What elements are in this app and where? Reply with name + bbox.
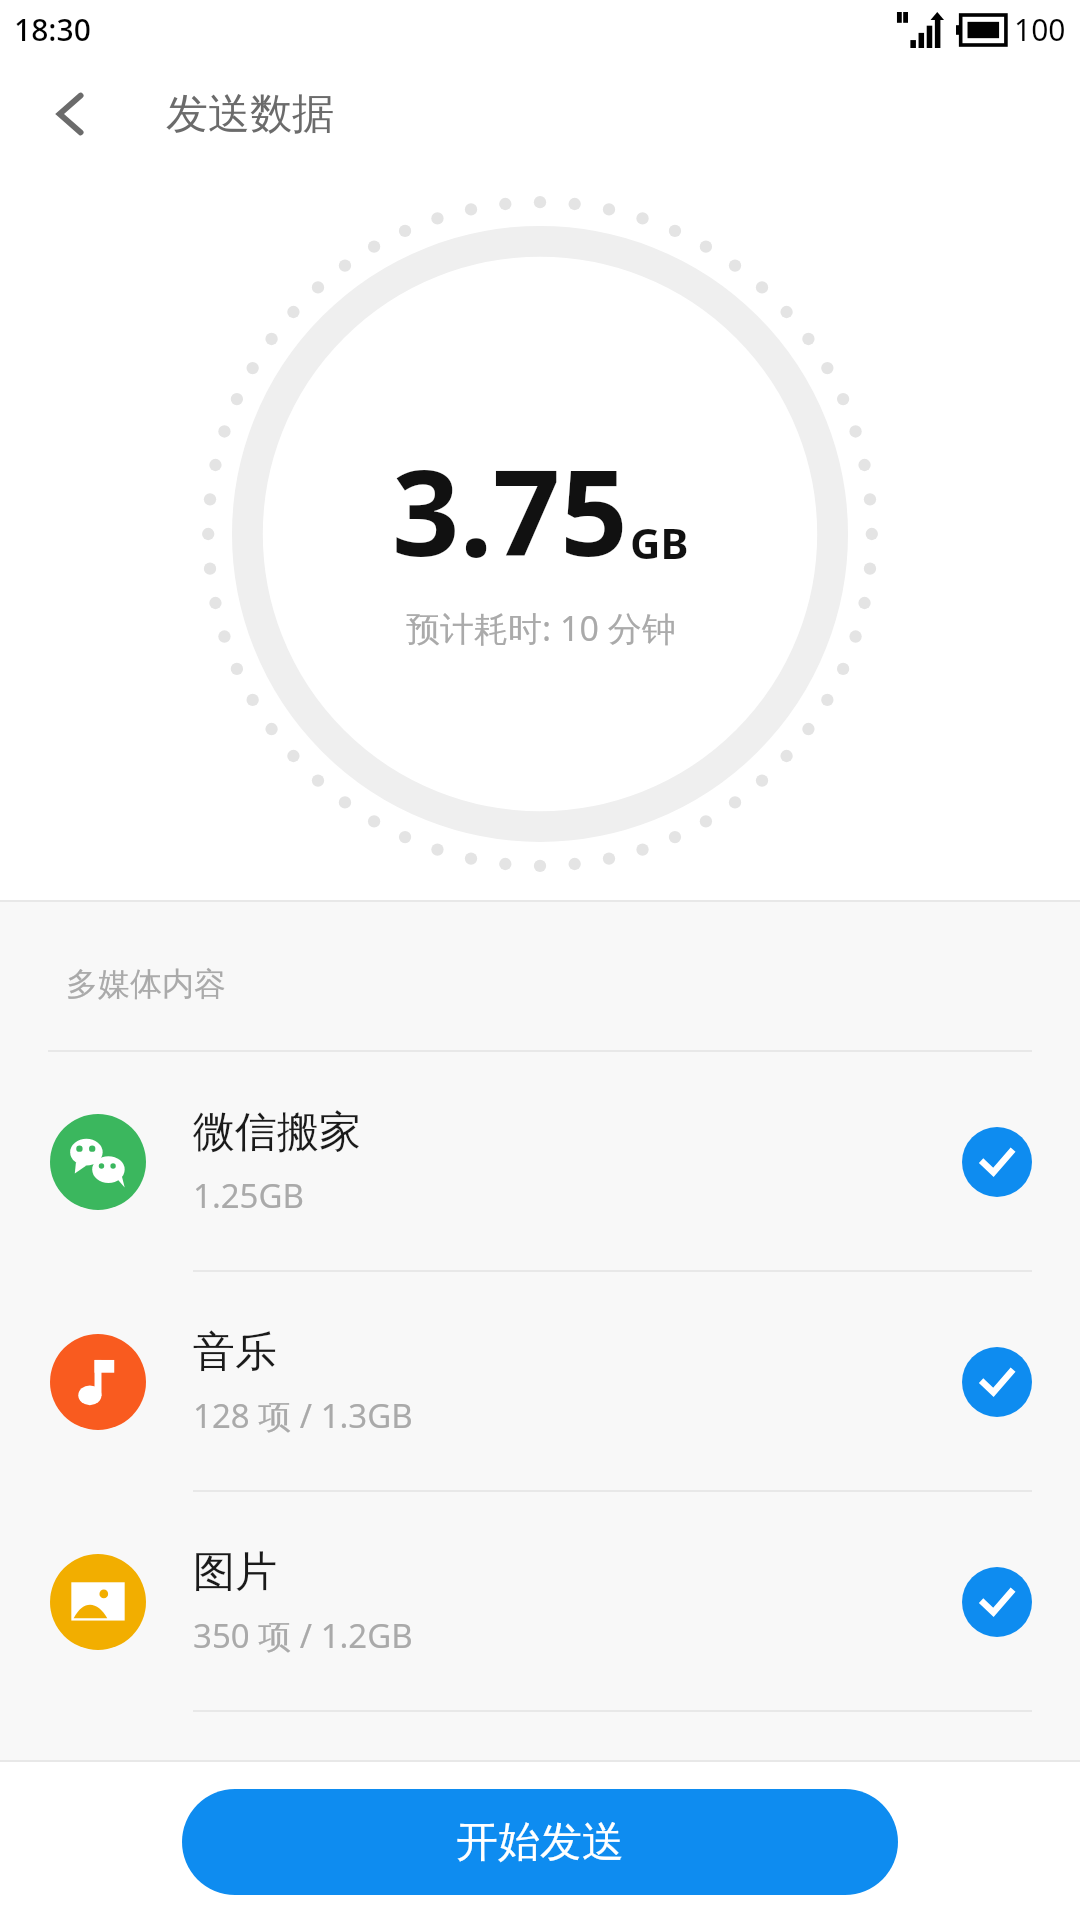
button[interactable]: 开始发送: [182, 1789, 898, 1895]
staticText: 音乐: [193, 1326, 277, 1379]
staticText: 发送数据: [166, 88, 334, 141]
staticText: 1.25GB: [193, 1173, 304, 1218]
button[interactable]: Selected 音乐: [962, 1347, 1032, 1417]
staticText: 多媒体内容: [66, 964, 226, 1004]
staticText: 350 项 / 1.2GB: [193, 1613, 413, 1658]
staticText: GB: [630, 514, 689, 571]
staticText: 18:30: [14, 9, 91, 50]
button[interactable]: 图片: [0, 1492, 1080, 1712]
staticText: 图片: [193, 1546, 277, 1599]
staticText: 微信搬家: [193, 1106, 361, 1159]
staticText: 100: [1014, 9, 1066, 50]
button[interactable]: 音乐: [0, 1272, 1080, 1492]
button[interactable]: 微信搬家: [0, 1052, 1080, 1272]
staticText: 预计耗时: 10 分钟: [406, 605, 676, 651]
staticText: 128 项 / 1.3GB: [193, 1393, 413, 1438]
button[interactable]: Selected 微信搬家: [962, 1127, 1032, 1197]
staticText: 开始发送: [456, 1816, 624, 1869]
button[interactable]: Selected 图片: [962, 1567, 1032, 1637]
button[interactable]: Back: [32, 75, 110, 153]
staticText: 3.75: [392, 430, 628, 591]
